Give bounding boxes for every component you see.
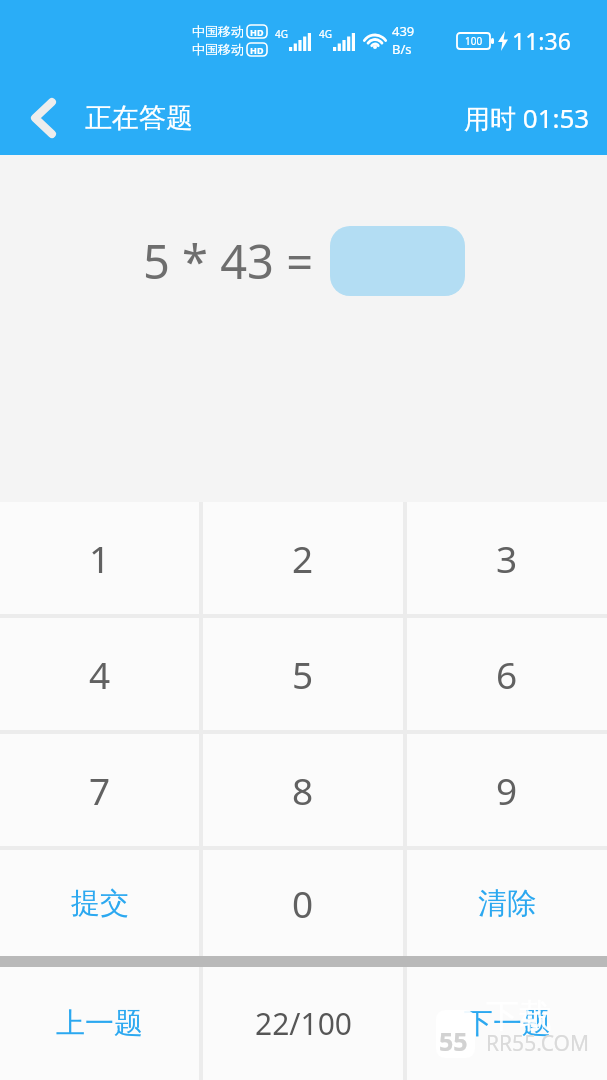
staticText: 8 (292, 765, 314, 815)
staticText: 下一题 (464, 1005, 551, 1042)
staticText: 5 (292, 649, 314, 699)
staticText: 上一题 (56, 1005, 143, 1042)
staticText: 正在答题 (85, 101, 193, 135)
staticText: 5 * 43 = (143, 229, 314, 293)
staticText: HD (250, 26, 264, 38)
staticText: 4G (275, 27, 288, 41)
staticText: 4G (319, 27, 332, 41)
staticText: 用时 01:53 (464, 100, 590, 136)
staticText: 0 (292, 878, 314, 928)
staticText: 7 (89, 765, 111, 815)
staticText: HD (250, 44, 264, 56)
staticText: 提交 (71, 885, 129, 922)
staticText: 22/100 (255, 1003, 352, 1044)
staticText: B/s (392, 40, 412, 58)
staticText: 下载 (486, 995, 552, 1037)
staticText: 4 (89, 649, 111, 699)
staticText: 100 (465, 34, 483, 48)
staticText: 9 (496, 765, 518, 815)
staticText: 中国移动 (192, 41, 244, 57)
staticText: 11:36 (512, 25, 571, 56)
staticText: 439 (392, 22, 415, 40)
staticText: 2 (292, 533, 314, 583)
staticText: 3 (496, 533, 518, 583)
staticText: RR55.COM (486, 1029, 590, 1058)
staticText: 1 (89, 533, 111, 583)
staticText: 清除 (478, 885, 536, 922)
staticText: 中国移动 (192, 23, 244, 39)
staticText: 55 (439, 1024, 468, 1058)
staticText: 6 (496, 649, 518, 699)
